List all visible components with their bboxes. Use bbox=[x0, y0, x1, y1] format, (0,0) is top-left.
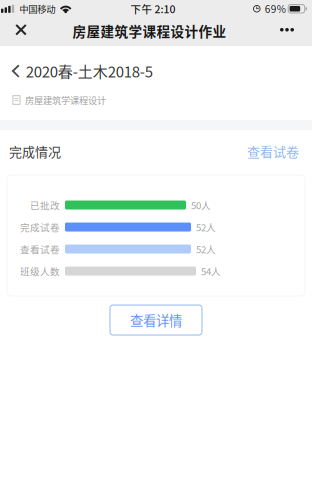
staticText: 2020春-土木2018-5 bbox=[26, 60, 153, 82]
staticText: 下午 2:10 bbox=[130, 1, 175, 16]
button[interactable]: 2020春-土木2018-5 bbox=[11, 59, 301, 83]
button[interactable]: 查看详情 bbox=[110, 305, 202, 335]
staticText: 50人 bbox=[191, 198, 211, 212]
staticText: 69% bbox=[265, 1, 286, 16]
staticText: 中国移动 bbox=[19, 2, 55, 15]
staticText: 52人 bbox=[196, 242, 216, 256]
staticText: 查看试卷 bbox=[20, 242, 60, 256]
staticText: 房屋建筑学课程设计作业 bbox=[72, 21, 226, 41]
staticText: 查看详情 bbox=[130, 310, 182, 330]
staticText: 完成试卷 bbox=[20, 220, 60, 234]
button[interactable]: 更多 bbox=[267, 17, 307, 43]
button[interactable]: 查看试卷 bbox=[247, 137, 299, 165]
staticText: 52人 bbox=[196, 220, 216, 234]
staticText: 已批改 bbox=[30, 198, 60, 212]
staticText: 查看试卷 bbox=[247, 142, 299, 160]
staticText: 房屋建筑学课程设计 bbox=[25, 93, 106, 107]
button[interactable]: 关闭 bbox=[1, 17, 41, 43]
staticText: 完成情况 bbox=[9, 142, 61, 160]
staticText: 54人 bbox=[201, 264, 221, 278]
staticText: 班级人数 bbox=[20, 264, 60, 278]
